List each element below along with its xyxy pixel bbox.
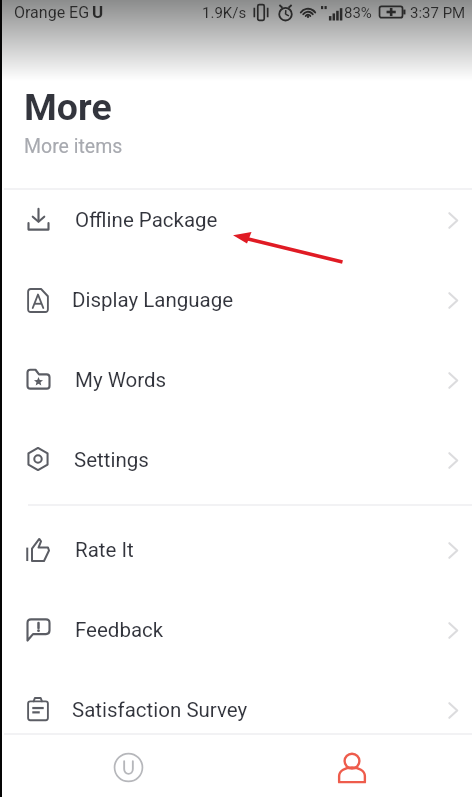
button[interactable]: Dictionary — [0, 735, 236, 797]
button[interactable]: Profile — [236, 735, 472, 797]
staticText: U — [92, 2, 104, 22]
staticText: 1.9K/s — [202, 4, 247, 22]
button[interactable]: My Words — [0, 340, 472, 420]
button[interactable]: Settings — [0, 420, 472, 500]
staticText: 83% — [344, 4, 372, 22]
staticText: Satisfaction Survey — [72, 698, 248, 722]
staticText: Display Language — [72, 288, 234, 312]
staticText: Rate It — [75, 538, 134, 562]
staticText: Offline Package — [75, 208, 218, 232]
button[interactable]: Feedback — [0, 590, 472, 670]
staticText: More — [24, 85, 112, 129]
button[interactable]: Rate It — [0, 510, 472, 590]
button[interactable]: Satisfaction Survey — [0, 670, 472, 750]
staticText: More items — [24, 135, 123, 158]
staticText: Feedback — [75, 618, 164, 642]
button[interactable]: Offline Package — [0, 180, 472, 260]
staticText: Orange EG — [14, 3, 90, 22]
button[interactable]: Display Language — [0, 260, 472, 340]
staticText: Settings — [74, 448, 149, 472]
staticText: My Words — [75, 368, 167, 392]
staticText: 3:37 PM — [410, 4, 466, 22]
